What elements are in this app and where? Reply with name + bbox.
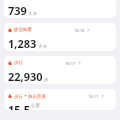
button[interactable]: 活动能量 [4, 0, 116, 18]
other: Open details [87, 28, 90, 32]
button[interactable]: 静息能量 [4, 23, 116, 51]
staticText: 18:17 [88, 94, 99, 99]
button[interactable]: 步行 [4, 56, 116, 84]
staticText: 静息能量 [14, 27, 32, 33]
staticText: 公里 [31, 103, 40, 109]
other: Open details [78, 61, 81, 65]
staticText: 大卡 [38, 44, 47, 50]
staticText: 1,283 [8, 36, 37, 51]
staticText: 步行 + 跑步距离 [14, 93, 46, 99]
staticText: 步 [44, 77, 49, 83]
staticText: 22,930 [8, 69, 43, 84]
staticText: 15.5 [8, 102, 30, 110]
staticText: 步行 [14, 60, 23, 66]
staticText: 18:18 [74, 28, 85, 33]
staticText: 大卡 [28, 11, 37, 17]
staticText: 18:17 [65, 61, 76, 66]
button[interactable]: 步行 + 跑步距离 [4, 89, 116, 110]
other: Open details [101, 94, 104, 98]
staticText: 739 [8, 3, 27, 18]
